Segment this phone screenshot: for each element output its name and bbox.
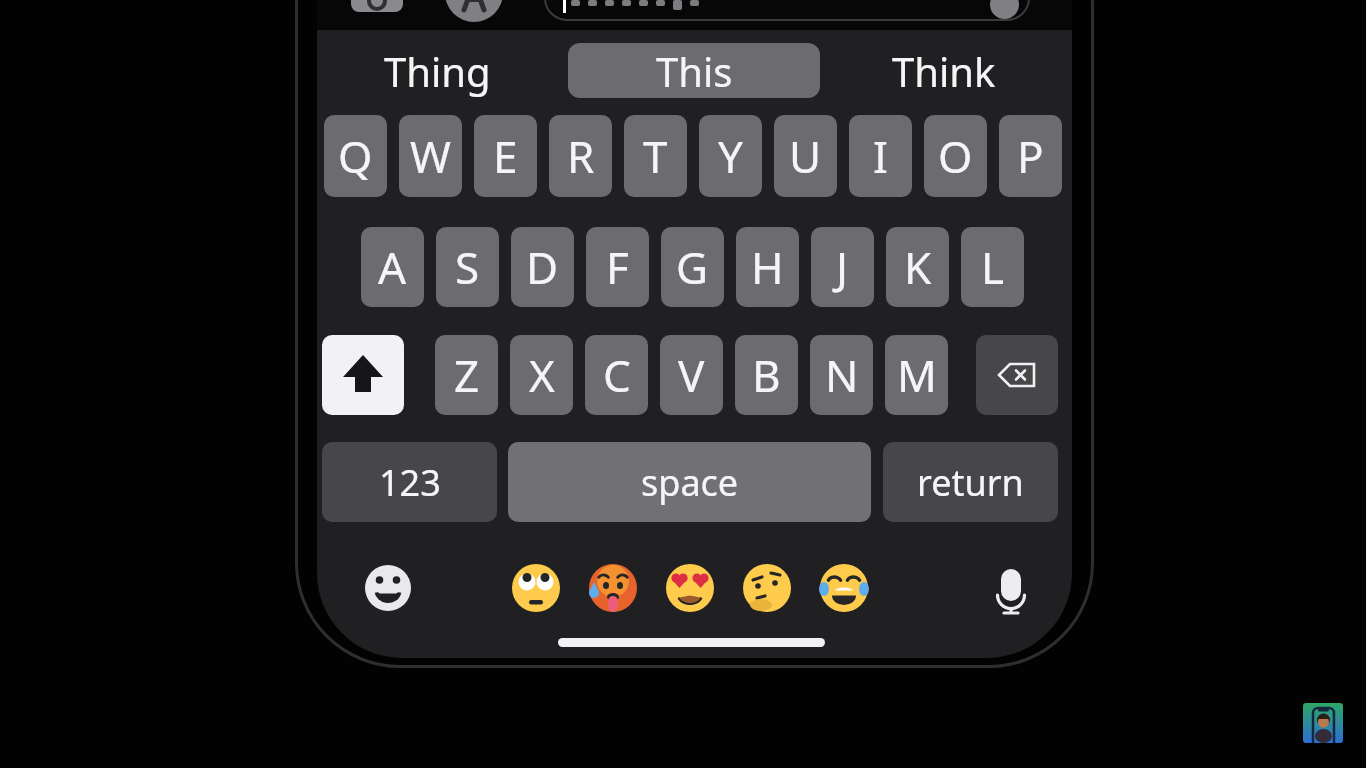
button[interactable]: A — [361, 227, 424, 307]
button[interactable]: I — [849, 115, 912, 197]
button[interactable]: L — [961, 227, 1024, 307]
staticText: E — [493, 126, 518, 186]
button[interactable]: P — [999, 115, 1062, 197]
staticText: F — [606, 237, 629, 297]
staticText: W — [410, 126, 451, 186]
staticText: N — [825, 345, 859, 405]
button[interactable] — [1303, 703, 1343, 743]
button[interactable]: H — [736, 227, 799, 307]
staticText: M — [897, 345, 937, 405]
button[interactable]: W — [399, 115, 462, 197]
staticText: L — [981, 237, 1005, 297]
staticText: G — [676, 237, 709, 297]
button[interactable]: C — [585, 335, 648, 415]
button[interactable]: N — [810, 335, 873, 415]
button[interactable] — [544, 0, 1030, 21]
button[interactable]: Z — [435, 335, 498, 415]
staticText: J — [836, 237, 849, 297]
button[interactable]: Q — [324, 115, 387, 197]
button[interactable]: Y — [699, 115, 762, 197]
button[interactable]: Thing — [337, 36, 537, 106]
button[interactable] — [744, 564, 792, 612]
staticText: B — [752, 345, 781, 405]
staticText: Y — [718, 126, 743, 186]
staticText: I — [873, 126, 888, 186]
staticText: P — [1017, 126, 1044, 186]
staticText: V — [678, 345, 705, 405]
staticText: Z — [454, 345, 480, 405]
staticText: This — [656, 44, 733, 98]
button[interactable] — [989, 565, 1033, 617]
staticText: Thing — [384, 44, 491, 98]
button[interactable] — [445, 0, 503, 22]
button[interactable]: K — [886, 227, 949, 307]
staticText: A — [378, 237, 407, 297]
button[interactable]: E — [474, 115, 537, 197]
staticText: space — [641, 458, 739, 507]
button[interactable]: R — [549, 115, 612, 197]
button[interactable]: return — [883, 442, 1058, 522]
button[interactable] — [351, 0, 403, 12]
staticText: K — [904, 237, 932, 297]
button[interactable] — [821, 564, 869, 612]
button[interactable]: D — [511, 227, 574, 307]
button[interactable] — [667, 564, 715, 612]
button[interactable]: Think — [844, 36, 1044, 106]
button[interactable]: F — [586, 227, 649, 307]
staticText: H — [751, 237, 784, 297]
staticText: C — [603, 345, 631, 405]
button[interactable]: T — [624, 115, 687, 197]
button[interactable]: U — [774, 115, 837, 197]
staticText: S — [455, 237, 480, 297]
button[interactable]: J — [811, 227, 874, 307]
button[interactable]: This — [568, 43, 820, 98]
staticText: R — [567, 126, 595, 186]
staticText: X — [529, 345, 555, 405]
staticText: 123 — [379, 458, 441, 507]
button[interactable]: 123 — [322, 442, 497, 522]
staticText: return — [917, 458, 1024, 507]
button[interactable] — [513, 564, 561, 612]
button[interactable]: M — [885, 335, 948, 415]
staticText: Think — [892, 44, 996, 98]
button[interactable]: space — [508, 442, 871, 522]
staticText: T — [643, 126, 668, 186]
button[interactable] — [322, 335, 404, 415]
staticText: U — [789, 126, 822, 186]
button[interactable]: O — [924, 115, 987, 197]
button[interactable]: B — [735, 335, 798, 415]
button[interactable] — [990, 0, 1019, 19]
button[interactable]: X — [510, 335, 573, 415]
staticText: Q — [338, 126, 373, 186]
button[interactable]: G — [661, 227, 724, 307]
button[interactable] — [976, 335, 1058, 415]
button[interactable] — [590, 564, 638, 612]
staticText: O — [938, 126, 973, 186]
staticText: D — [526, 237, 559, 297]
button[interactable]: S — [436, 227, 499, 307]
button[interactable] — [365, 565, 411, 611]
button[interactable]: V — [660, 335, 723, 415]
